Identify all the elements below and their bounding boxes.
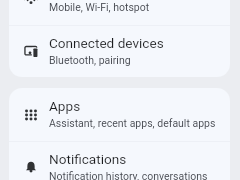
button[interactable]: Notifications [9,141,230,180]
other: Notifications [24,160,38,174]
other: Network and internet [24,0,38,6]
button[interactable]: Connected devices [9,25,230,77]
staticText: Notification history, conversations [49,170,208,180]
staticText: Apps [49,98,81,114]
button[interactable]: Network and internet [9,0,230,25]
button[interactable]: Apps [9,88,230,141]
other: Apps [24,108,38,122]
staticText: Bluetooth, pairing [49,54,131,66]
staticText: Assistant, recent apps, default apps [49,117,216,129]
staticText: Notifications [49,151,127,167]
staticText: Connected devices [49,35,164,51]
staticText: Mobile, Wi-Fi, hotspot [49,1,150,13]
other: Connected devices [24,44,38,58]
